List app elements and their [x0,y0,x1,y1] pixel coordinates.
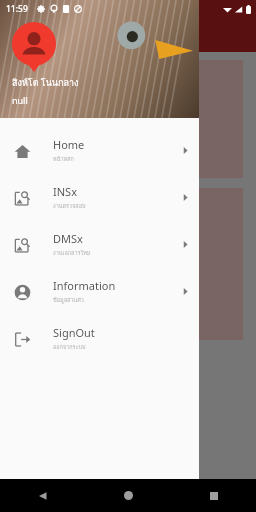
staticText: Information [53,278,116,293]
button[interactable]: DMSx [0,221,199,268]
staticText: INSx [53,184,77,199]
staticText: งานเอกสารใหม่ [53,249,91,258]
button[interactable]: Information [0,268,199,315]
staticText: ออกจากระบบ [53,343,86,352]
button[interactable]: Home [0,127,199,174]
button[interactable]: ns [13,188,243,340]
button[interactable]: SignOut [0,315,199,362]
staticText: DMSx [53,231,83,246]
button[interactable]: Back [0,479,86,512]
staticText: 11:59 [6,3,28,15]
button[interactable]: Recent apps [171,479,256,512]
staticText: SignOut [53,325,95,340]
button[interactable]: ID [13,60,243,178]
staticText: Home [53,137,85,152]
staticText: งานตรวจสอบ [53,202,86,211]
staticText: ข้อมูลส่วนตัว [53,296,84,305]
staticText: สิงห์โต โนนกลาง [12,76,79,90]
button[interactable]: INSx [0,174,199,221]
staticText: null [12,94,28,106]
button[interactable]: Home [86,479,171,512]
staticText: หน้าหลัก [53,155,74,164]
